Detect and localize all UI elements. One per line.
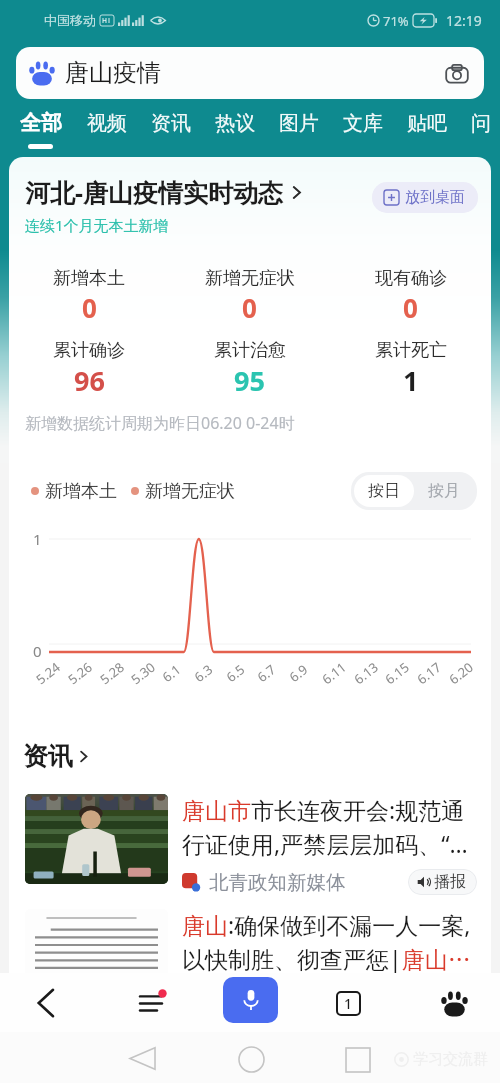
staticText: 唐山市市长连夜开会:规范通行证使用,严禁层层加码、“… [182, 794, 477, 860]
staticText: 0 [33, 641, 42, 661]
button[interactable]: Recents [346, 1048, 370, 1072]
staticText: 96 [74, 362, 105, 399]
button[interactable]: 累计死亡 [330, 339, 491, 399]
button[interactable]: 播报 [408, 869, 477, 895]
button[interactable]: 累计确诊 [9, 339, 169, 399]
staticText: 新增本土 [53, 267, 125, 290]
staticText: 6.3 [190, 660, 217, 686]
staticText: 现有确诊 [375, 267, 447, 290]
staticText: 资讯 [151, 111, 191, 136]
staticText: 热议 [215, 111, 255, 136]
button[interactable]: Home [238, 1046, 265, 1073]
button[interactable]: 文库 [343, 111, 407, 136]
button[interactable]: 累计治愈 [169, 339, 330, 399]
staticText: 0 [82, 290, 97, 325]
staticText: 资讯 [23, 741, 73, 772]
staticText: 0 [403, 290, 418, 325]
staticText: 6.5 [222, 660, 249, 686]
button[interactable]: 放到桌面 [372, 182, 478, 213]
staticText: 图片 [279, 111, 319, 136]
staticText: 6.13 [350, 658, 382, 688]
button[interactable]: Back [10, 978, 82, 1028]
button[interactable]: 唐山疫情 [16, 47, 484, 99]
staticText: 新增无症状 [205, 267, 295, 290]
staticText: 唐山疫情 [65, 58, 161, 88]
staticText: 71% [383, 12, 409, 30]
staticText: 新增本土 [45, 480, 117, 503]
staticText: 累计死亡 [375, 339, 447, 362]
staticText: 95 [234, 362, 265, 399]
button[interactable]: 热议 [215, 111, 279, 136]
staticText: 5.28 [96, 658, 128, 688]
staticText: 5.30 [127, 658, 159, 688]
button[interactable]: 全部 [20, 110, 87, 136]
button[interactable]: 贴吧 [407, 111, 471, 136]
button[interactable]: 唐山市市长连夜开会:规范通行证使用,严禁层层加码、“… [25, 794, 477, 895]
staticText: 新增无症状 [145, 480, 235, 503]
staticText: 贴吧 [407, 111, 447, 136]
button[interactable]: Camera search [443, 60, 470, 87]
staticText: 6.9 [285, 660, 312, 686]
staticText: 累计治愈 [214, 339, 286, 362]
button[interactable]: 按月 [414, 475, 474, 507]
button[interactable]: 新增无症状 [169, 267, 330, 325]
staticText: 唐山:确保做到不漏一人一案,以快制胜、彻查严惩|唐山市… [182, 909, 477, 975]
staticText: 全部 [20, 110, 62, 136]
staticText: 5.26 [64, 658, 96, 688]
staticText: 北青政知新媒体 [209, 870, 346, 895]
staticText: 累计确诊 [53, 339, 125, 362]
staticText: 问 [471, 111, 476, 136]
staticText: 6.17 [413, 658, 445, 688]
button[interactable]: 视频 [87, 111, 151, 136]
button[interactable]: Menu [116, 978, 188, 1028]
staticText: 按日 [368, 481, 400, 501]
button[interactable]: 图片 [279, 111, 343, 136]
staticText: 1 [403, 362, 419, 399]
button[interactable]: 河北-唐山疫情实时动态 [25, 175, 305, 209]
staticText: 6.7 [253, 660, 280, 686]
button[interactable]: 唐山:确保做到不漏一人一案,以快制胜、彻查严惩|唐山市… [25, 909, 477, 999]
staticText: 放到桌面 [405, 188, 465, 207]
button[interactable]: Voice search [223, 977, 278, 1023]
staticText: 1 [33, 529, 42, 549]
staticText: 连续1个月无本土新增 [25, 215, 169, 235]
button[interactable]: 现有确诊 [330, 267, 491, 325]
button[interactable]: 新增本土 [9, 267, 169, 325]
staticText: 6.15 [381, 658, 413, 688]
button[interactable]: 资讯 [23, 741, 91, 772]
button[interactable]: Back [129, 1046, 157, 1070]
staticText: 6.20 [445, 658, 477, 688]
staticText: 0 [242, 290, 257, 325]
button[interactable]: 问 [471, 111, 500, 136]
staticText: 学习交流群 [413, 1050, 488, 1069]
staticText: 按月 [428, 481, 460, 501]
staticText: 河北-唐山疫情实时动态 [25, 175, 284, 209]
button[interactable]: 资讯 [151, 111, 215, 136]
button[interactable]: Baidu home [418, 978, 490, 1028]
staticText: 6.11 [318, 658, 350, 688]
staticText: 文库 [343, 111, 383, 136]
staticText: 新增数据统计周期为昨日06.20 0-24时 [25, 412, 295, 434]
staticText: 视频 [87, 111, 127, 136]
staticText: 中国移动 [44, 12, 96, 28]
staticText: 5.24 [32, 658, 64, 688]
button[interactable]: 按日 [354, 475, 414, 507]
button[interactable]: Tabs [312, 978, 384, 1028]
staticText: 12:19 [446, 11, 482, 30]
staticText: 1 [344, 994, 353, 1013]
staticText: 6.1 [158, 660, 185, 686]
staticText: 播报 [434, 872, 466, 892]
